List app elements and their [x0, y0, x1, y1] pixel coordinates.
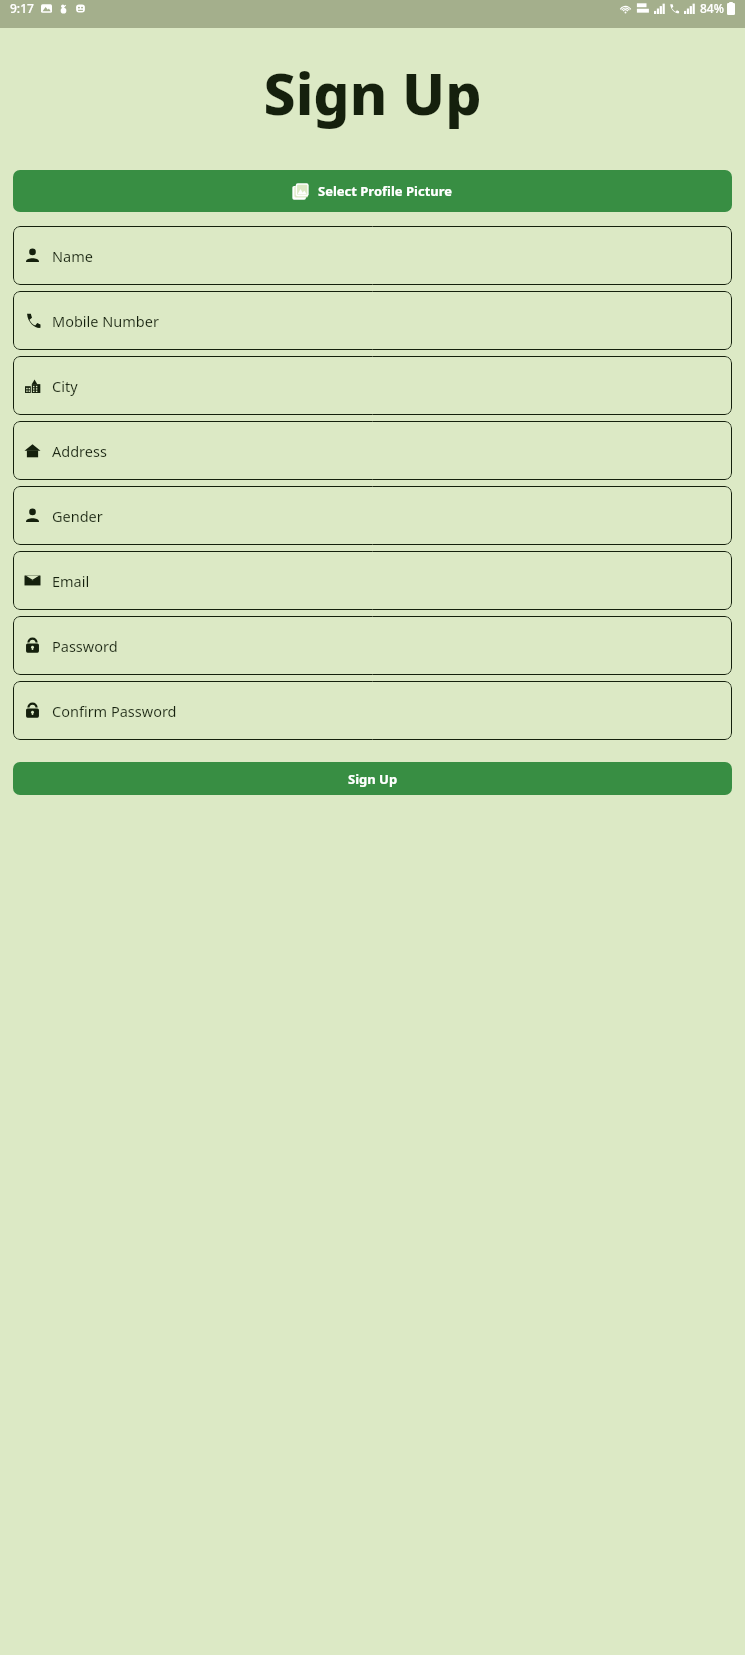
button[interactable]: Name [13, 226, 732, 285]
button[interactable]: City [13, 356, 732, 415]
staticText: Sign Up [348, 770, 398, 788]
staticText: Sign Up [0, 54, 745, 132]
button[interactable]: Gender [13, 486, 732, 545]
staticText: Password [52, 636, 118, 656]
button[interactable]: Mobile Number [13, 291, 732, 350]
staticText: City [52, 376, 78, 396]
staticText: 84% [700, 0, 724, 16]
staticText: Select Profile Picture [318, 182, 453, 200]
button[interactable]: Email [13, 551, 732, 610]
staticText: Confirm Password [52, 701, 177, 721]
button[interactable]: Confirm Password [13, 681, 732, 740]
staticText: Email [52, 571, 90, 591]
button[interactable]: Sign Up [13, 762, 732, 795]
staticText: 9:17 [10, 0, 34, 16]
button[interactable]: Password [13, 616, 732, 675]
button[interactable]: Address [13, 421, 732, 480]
staticText: Mobile Number [52, 311, 159, 331]
staticText: Name [52, 246, 93, 266]
button[interactable]: Select Profile Picture [13, 170, 732, 212]
staticText: Gender [52, 506, 103, 526]
staticText: Address [52, 441, 107, 461]
